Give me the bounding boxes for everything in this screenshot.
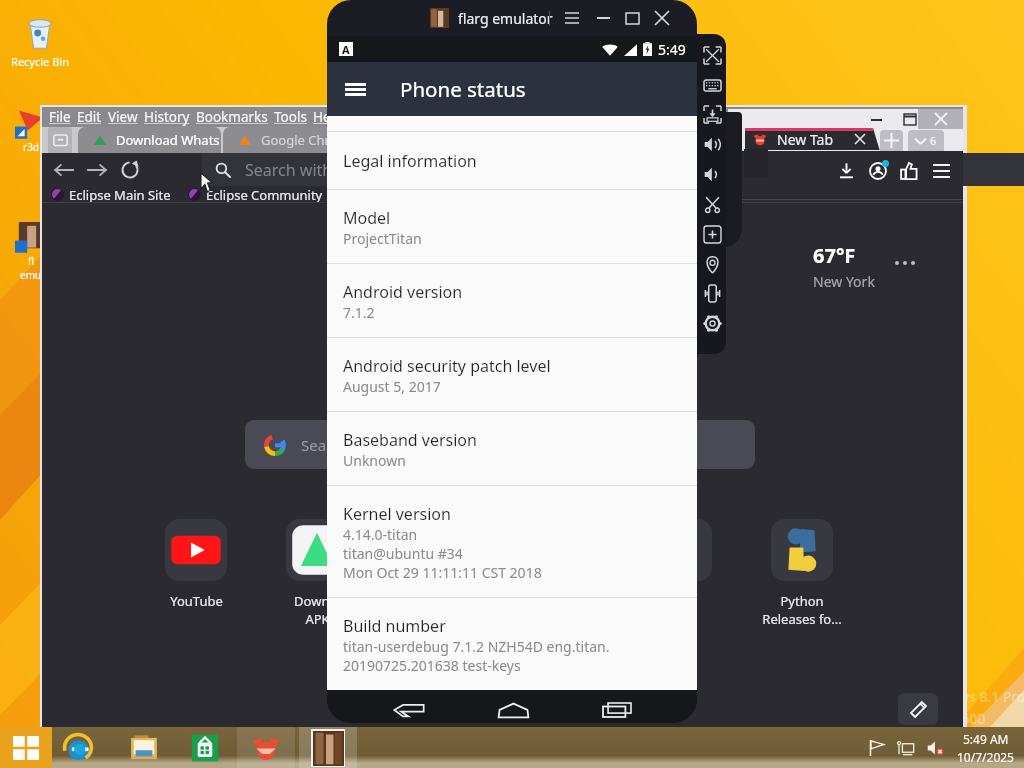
button[interactable]: Firefox window [237,727,295,768]
button[interactable]: Fullscreen [698,41,726,69]
button[interactable]: Edit [77,108,102,126]
staticText: e [677,592,685,610]
staticText: Build number [343,615,446,637]
button[interactable]: Download Whats [78,127,221,153]
staticText: Eclipse Community [206,186,323,202]
button[interactable]: Restore [894,110,926,129]
staticText: fl [28,254,35,268]
button[interactable]: Start [0,727,52,768]
button[interactable]: Add device [698,220,726,248]
button[interactable]: Build number [327,598,697,690]
button[interactable]: Location [698,250,726,278]
staticText: Build 9600 [916,709,986,728]
staticText: Edit [77,108,102,126]
button[interactable]: Rotate [698,279,726,307]
staticText: Android version [343,281,463,303]
button[interactable]: Minimize [860,110,892,129]
staticText: Recycle Bin [11,54,69,69]
staticText: r3d [23,140,39,154]
staticText: New York [813,272,875,291]
button[interactable]: Back [391,700,427,720]
button[interactable]: Home [495,700,531,720]
button[interactable]: Close [918,109,963,129]
button[interactable]: Minimize [590,6,616,30]
button[interactable]: e [633,519,729,628]
button[interactable]: Downloads [831,155,862,186]
staticText: APK [305,610,330,628]
button[interactable]: Kernel version [327,486,697,597]
button[interactable]: Settings [698,309,726,337]
button[interactable]: Open navigation drawer [327,62,383,116]
button[interactable]: YouTube [148,519,244,610]
staticText: Eclipse Main Site [69,186,171,202]
button[interactable]: Legal information [327,132,697,189]
staticText: Releases fo... [762,610,842,628]
button[interactable]: Tools [274,108,307,126]
button[interactable]: Eclipse Main Site [51,186,171,202]
button[interactable]: Keyboard [698,71,726,99]
button[interactable]: File Explorer [115,727,173,768]
staticText: R [353,186,362,202]
staticText: ProjectTitan [343,229,422,248]
staticText: Legal information [343,150,477,172]
button[interactable]: List all tabs [48,127,72,153]
button[interactable]: Android version [327,264,697,337]
button[interactable]: Google Chrom [223,127,366,153]
button[interactable]: Reload [119,159,141,181]
button[interactable]: Collapse panel [726,185,744,203]
button[interactable]: Volume up [698,130,726,158]
button[interactable]: Back [53,159,75,181]
button[interactable]: Maximize [619,6,645,30]
button[interactable]: Down... [269,519,365,628]
button[interactable]: Android security patch level [327,338,697,411]
button[interactable]: Screenshot [698,190,726,218]
button[interactable]: View [108,108,138,126]
button[interactable]: File [49,108,71,126]
button[interactable]: Search with Google or enter address [245,420,755,469]
button[interactable]: Install APK [698,100,726,128]
button[interactable]: Model [327,190,697,263]
staticText: August 5, 2017 [343,377,441,396]
button[interactable]: Account [862,155,893,186]
button[interactable]: Forward [86,159,108,181]
button[interactable]: Menu [559,6,585,30]
button[interactable]: Search with Google or enter address [202,153,1024,186]
button[interactable]: Volume down [698,160,726,188]
staticText: Unknown [343,451,406,470]
staticText: Search with Google or enter address [245,159,519,181]
button[interactable]: Recent apps [599,700,635,720]
button[interactable]: New tab [880,130,903,151]
staticText: Bookmarks [196,108,268,126]
staticText: 67°F [813,242,856,269]
button[interactable]: R [335,186,362,202]
button[interactable]: Eclipse Community [188,186,323,202]
button[interactable]: Extensions [893,155,924,186]
button[interactable]: Help [313,108,343,126]
button[interactable]: More options [892,250,918,276]
button[interactable]: All tabs [908,130,944,151]
staticText: File [49,108,71,126]
staticText: Mon Oct 29 11:11:11 CST 2018 [343,563,542,582]
button[interactable]: New Tab [745,128,873,150]
button[interactable]: Goog... [390,519,486,610]
button[interactable]: Emulator window [299,727,357,768]
staticText: 4.14.0-titan [343,525,418,544]
staticText: 5:49 AM [963,731,1009,747]
staticText: e [555,592,563,610]
button[interactable]: Edit [898,693,938,725]
button[interactable]: Bookmarks [196,108,268,126]
button[interactable]: Close [649,6,675,30]
staticText: Search with Google or enter address [301,435,558,455]
button[interactable]: Menu [924,154,958,188]
staticText: Download Whats [116,131,220,149]
button[interactable]: e [511,519,607,628]
staticText: 5:49 [658,40,686,59]
button[interactable]: Store [176,727,234,768]
staticText: 7.1.2 [343,303,375,322]
button[interactable]: Internet Explorer [49,727,107,768]
button[interactable]: History [144,108,190,126]
button[interactable]: Python [754,519,850,628]
button[interactable]: Baseband version [327,412,697,485]
staticText: Python [780,592,824,610]
